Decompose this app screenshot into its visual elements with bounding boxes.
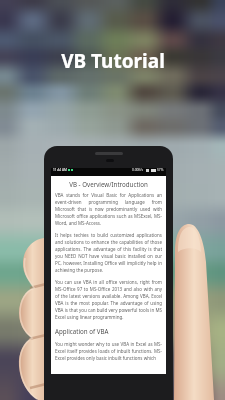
staticText: 57%: [157, 168, 164, 172]
staticText: You might wonder why to use VBA in Excel…: [55, 341, 162, 361]
staticText: 11:44 AM: [53, 168, 67, 172]
staticText: 0.00K/s: [132, 168, 144, 172]
staticText: VB Tutorial: [61, 48, 165, 74]
staticText: You can use VBA in all office versions, …: [55, 279, 162, 320]
staticText: Application of VBA: [55, 327, 109, 335]
staticText: It helps techies to build customized app…: [55, 232, 162, 273]
staticText: VB - Overview/Introduction: [55, 180, 162, 188]
staticText: VBA stands for Visual Basic for Applicat…: [55, 192, 162, 226]
